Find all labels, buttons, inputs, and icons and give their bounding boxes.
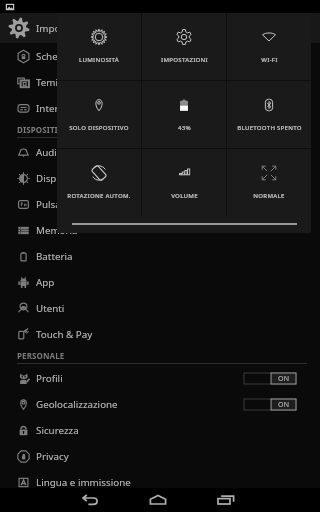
staticText: IMPOSTAZIONI [161,55,208,63]
button[interactable]: ON [244,399,296,410]
button[interactable]: Back [56,488,124,512]
button[interactable]: VOLUME [142,149,226,216]
staticText: Utenti [36,302,65,315]
button[interactable]: Sicurezza [0,417,320,443]
staticText: App [36,276,55,289]
button[interactable]: ROTAZIONE AUTOM. [57,149,141,216]
button[interactable]: Impostazioni [0,13,320,43]
button[interactable]: Touch & Pay [0,321,320,347]
staticText: Profili [36,372,63,385]
staticText: Geolocalizzazione [36,398,118,411]
button[interactable]: Recent apps [192,488,260,512]
staticText: Sicurezza [36,424,79,437]
button[interactable]: Home [124,488,192,512]
staticText: Lingua e immissione [36,476,131,489]
staticText: ROTAZIONE AUTOM. [67,191,131,199]
staticText: BLUETOOTH SPENTO [237,123,302,131]
staticText: Audio [36,146,63,159]
button[interactable]: IMPOSTAZIONI [142,13,226,80]
button[interactable]: Interfaccia [0,95,320,121]
button[interactable]: Audio [0,139,320,165]
button[interactable]: Privacy [0,443,320,469]
button[interactable]: Temi [0,69,320,95]
button[interactable]: Geolocalizzazione [0,391,320,417]
staticText: Temi [36,76,58,89]
staticText: ON [278,374,290,384]
button[interactable]: LUMINOSITÀ [57,13,141,80]
staticText: Privacy [36,450,69,463]
button[interactable]: BLUETOOTH SPENTO [227,81,311,148]
staticText: NORMALE [253,191,285,199]
staticText: ON [278,400,290,410]
button[interactable]: Utenti [0,295,320,321]
button[interactable]: 43% [142,81,226,148]
staticText: PERSONALE [17,350,65,361]
button[interactable]: ON [244,373,296,384]
button[interactable]: WI-FI [227,13,311,80]
button[interactable]: Lingua e immissione [0,469,320,495]
staticText: Memoria [36,224,78,237]
button[interactable]: Profili [0,365,320,391]
staticText: DISPOSITIVO [17,124,70,135]
staticText: Schermata di blocco [36,50,129,63]
button[interactable]: Display [0,165,320,191]
staticText: Impostazioni [36,22,96,35]
staticText: VOLUME [171,191,198,199]
staticText: Display [36,172,70,185]
staticText: Touch & Pay [36,328,93,341]
button[interactable]: NORMALE [227,149,311,216]
staticText: WI-FI [261,55,278,63]
staticText: Pulsanti [36,198,73,211]
button[interactable]: Memoria [0,217,320,243]
staticText: SOLO DISPOSITIVO [69,123,129,131]
staticText: 43% [178,123,191,131]
button[interactable]: Batteria [0,243,320,269]
button[interactable]: Screenshot [5,2,15,12]
button[interactable]: Pulsanti [0,191,320,217]
staticText: Interfaccia [36,102,85,115]
button[interactable]: SOLO DISPOSITIVO [57,81,141,148]
staticText: Batteria [36,250,73,263]
button[interactable]: Schermata di blocco [0,43,320,69]
staticText: LUMINOSITÀ [79,55,119,63]
button[interactable]: App [0,269,320,295]
